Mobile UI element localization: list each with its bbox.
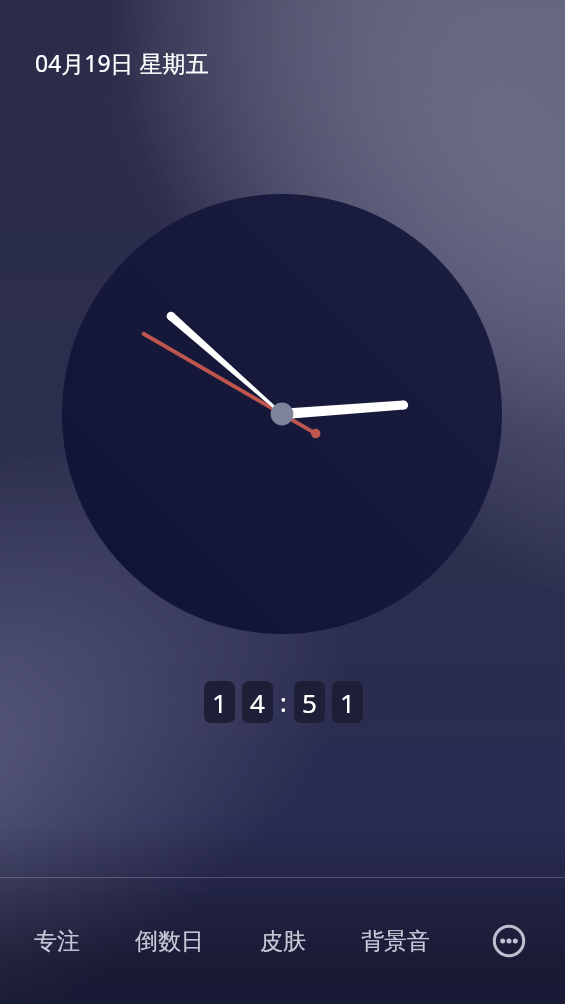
staticText: 专注	[34, 927, 80, 956]
staticText: 4	[250, 685, 265, 720]
staticText: :	[280, 685, 287, 719]
button[interactable]: 背景音	[339, 909, 452, 973]
staticText: 倒数日	[135, 927, 204, 956]
button[interactable]: 专注	[0, 909, 113, 973]
staticText: 背景音	[361, 927, 430, 956]
button[interactable]: 倒数日	[113, 909, 226, 973]
staticText: 04月19日 星期五	[35, 47, 209, 78]
staticText: 1	[212, 685, 227, 720]
staticText: 皮肤	[260, 927, 306, 956]
staticText: 5	[302, 685, 317, 720]
staticText: 1	[340, 685, 355, 720]
button[interactable]: More options	[452, 909, 565, 973]
button[interactable]: 皮肤	[226, 909, 339, 973]
